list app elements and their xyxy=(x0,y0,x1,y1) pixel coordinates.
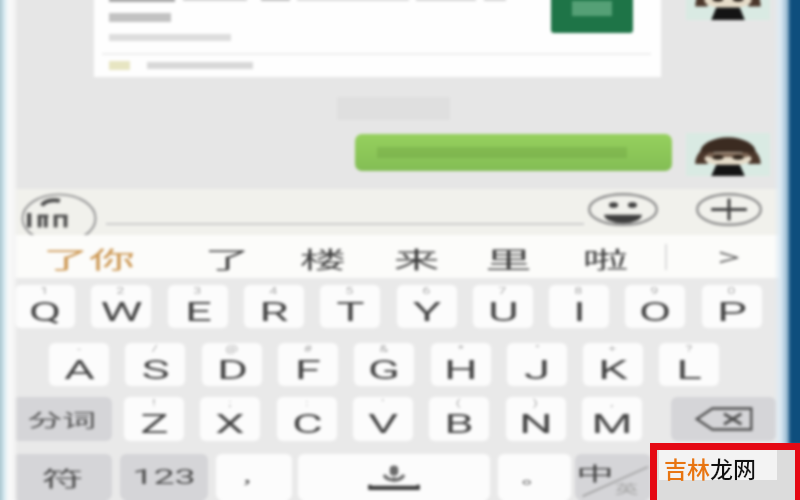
staticText: 楼 xyxy=(299,241,345,274)
button[interactable]: 3 xyxy=(168,285,228,328)
button[interactable]: ， xyxy=(216,454,292,500)
button[interactable]: ) xyxy=(506,397,566,441)
button[interactable]: " xyxy=(507,343,567,386)
button[interactable]: 2 xyxy=(91,285,151,328)
staticText: J xyxy=(524,356,550,385)
button[interactable]: 啦 xyxy=(572,236,638,278)
button[interactable] xyxy=(94,0,661,77)
staticText: Z xyxy=(140,410,169,439)
button[interactable]: 123 xyxy=(120,454,208,500)
staticText: I xyxy=(573,298,586,327)
button[interactable]: 6 xyxy=(397,285,457,328)
button[interactable]: Space xyxy=(298,454,490,500)
button[interactable]: 了你 xyxy=(29,236,149,278)
button[interactable]: 符 xyxy=(12,454,112,500)
button[interactable]: 了 xyxy=(194,236,260,278)
staticText: 123 xyxy=(132,465,196,490)
button[interactable]: More candidates xyxy=(695,235,765,278)
staticText: 5 xyxy=(345,286,355,297)
staticText: " xyxy=(535,344,540,355)
button[interactable]: + xyxy=(583,343,643,386)
button[interactable]: & xyxy=(354,343,414,386)
staticText: G xyxy=(367,356,401,385)
staticText: 里 xyxy=(485,241,531,274)
button[interactable]: 来 xyxy=(383,236,449,278)
button[interactable]: Backspace xyxy=(671,397,776,441)
button[interactable]: - xyxy=(49,343,109,386)
button[interactable]: Switch language xyxy=(575,454,651,500)
button[interactable]: More options xyxy=(696,193,762,226)
staticText: 来 xyxy=(393,241,439,274)
button[interactable]: ! xyxy=(124,397,184,441)
staticText: 吉林 xyxy=(664,451,710,484)
button[interactable]: ( xyxy=(429,397,489,441)
staticText: F xyxy=(295,356,321,385)
staticText: & xyxy=(379,344,389,355)
button[interactable]: ' xyxy=(353,397,413,441)
staticText: 分词 xyxy=(28,406,96,432)
staticText: 6 xyxy=(422,286,432,297)
button[interactable]: Profile picture xyxy=(686,133,770,176)
staticText: A xyxy=(63,356,96,385)
button[interactable]: 9 xyxy=(625,285,685,328)
staticText: S xyxy=(141,356,170,385)
button[interactable]: # xyxy=(278,343,338,386)
button[interactable]: 。 xyxy=(498,454,571,500)
staticText: * xyxy=(458,344,464,355)
staticText: B xyxy=(444,410,474,439)
staticText: X xyxy=(215,410,245,439)
staticText: , xyxy=(610,398,614,409)
staticText: 。 xyxy=(521,466,549,488)
staticText: C xyxy=(291,410,324,439)
staticText: 了 xyxy=(204,241,250,274)
button[interactable]: Profile picture xyxy=(686,0,770,20)
button[interactable] xyxy=(355,134,672,171)
button[interactable]: 5 xyxy=(320,285,380,328)
staticText: R xyxy=(259,298,289,327)
button[interactable]: , xyxy=(582,397,642,441)
staticText: ， xyxy=(240,466,268,488)
staticText: 啦 xyxy=(582,241,628,274)
staticText: ) xyxy=(533,398,539,409)
staticText: E xyxy=(184,298,213,327)
button[interactable]: 8 xyxy=(549,285,609,328)
button[interactable]: Voice input xyxy=(21,193,97,233)
staticText: W xyxy=(100,298,143,327)
button[interactable]: 1 xyxy=(15,285,75,328)
staticText: - xyxy=(77,344,82,355)
button[interactable]: ? xyxy=(659,343,719,386)
staticText: M xyxy=(591,410,633,439)
button[interactable]: * xyxy=(431,343,491,386)
button[interactable]: Emoji xyxy=(588,193,658,226)
staticText: / xyxy=(152,344,158,355)
button[interactable]: @ xyxy=(202,343,262,386)
staticText: P xyxy=(717,298,747,327)
button[interactable]: 分词 xyxy=(12,397,112,441)
button[interactable]: / xyxy=(125,343,185,386)
staticText: ! xyxy=(152,398,157,409)
staticText: D xyxy=(216,356,249,385)
staticText: 1 xyxy=(40,286,50,297)
button[interactable]: : xyxy=(277,397,337,441)
staticText: + xyxy=(608,344,618,355)
staticText: # xyxy=(303,344,313,355)
button[interactable]: 4 xyxy=(244,285,304,328)
staticText: V xyxy=(368,410,398,439)
button[interactable]: 楼 xyxy=(289,236,355,278)
button[interactable]: 7 xyxy=(473,285,533,328)
staticText: 英 xyxy=(614,480,640,497)
staticText: O xyxy=(638,298,672,327)
button[interactable] xyxy=(657,454,776,500)
button[interactable]: 里 xyxy=(475,236,541,278)
staticText: H xyxy=(444,356,478,385)
staticText: L xyxy=(676,356,702,385)
button[interactable]: 0 xyxy=(702,285,762,328)
staticText: @ xyxy=(225,344,240,355)
staticText: 7 xyxy=(498,286,508,297)
staticText: ' xyxy=(381,398,385,409)
staticText: 龙网 xyxy=(710,451,756,484)
button[interactable]: ; xyxy=(200,397,260,441)
staticText: T xyxy=(336,298,365,327)
